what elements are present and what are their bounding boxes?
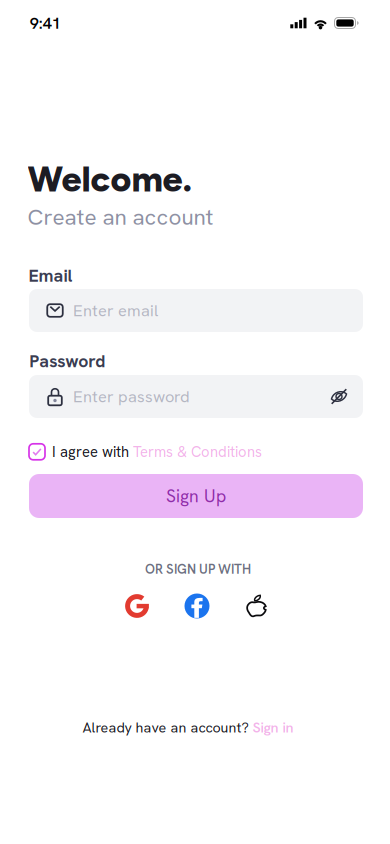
- button[interactable]: I agree with: [29, 440, 363, 464]
- staticText: Password: [29, 349, 105, 372]
- staticText: Sign Up: [166, 484, 226, 507]
- staticText: I agree with: [52, 442, 133, 461]
- staticText: Enter email: [73, 300, 158, 321]
- staticText: Sign in: [252, 718, 293, 737]
- staticText: OR SIGN UP WITH: [145, 560, 251, 578]
- button[interactable]: Sign up with Google: [125, 594, 149, 618]
- button[interactable]: Already have an account?: [82, 718, 293, 737]
- staticText: Create an account: [27, 202, 213, 232]
- staticText: Terms & Conditions: [133, 442, 262, 461]
- button[interactable]: Sign up with Apple: [247, 594, 269, 618]
- staticText: Welcome.: [27, 158, 192, 200]
- staticText: Enter password: [73, 386, 190, 407]
- staticText: Email: [28, 264, 72, 287]
- button[interactable]: Sign Up: [29, 474, 363, 518]
- staticText: 9:41: [30, 12, 61, 34]
- button[interactable]: Show password: [326, 383, 352, 409]
- staticText: Already have an account?: [82, 718, 252, 737]
- button[interactable]: Sign up with Facebook: [184, 593, 209, 618]
